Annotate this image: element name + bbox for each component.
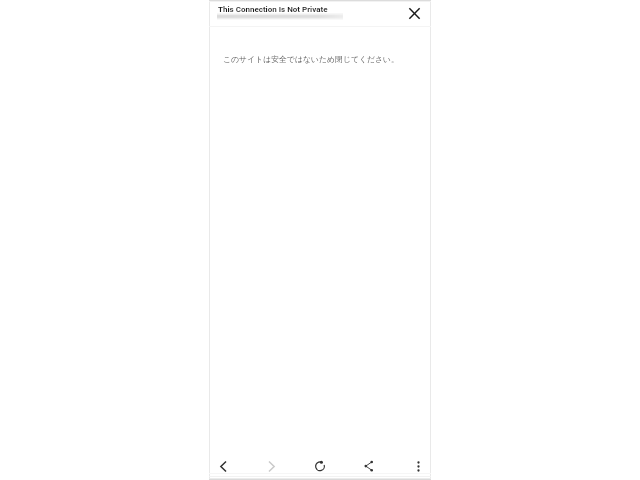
- button[interactable]: Share: [356, 453, 382, 479]
- staticText: This Connection Is Not Private: [218, 5, 328, 14]
- button[interactable]: Close: [404, 3, 424, 23]
- button[interactable]: Back: [210, 453, 236, 479]
- button[interactable]: More options: [405, 453, 431, 479]
- staticText: このサイトは安全ではないため閉じてください。: [223, 54, 399, 64]
- button[interactable]: Refresh: [307, 453, 333, 479]
- button[interactable]: Forward: [258, 453, 284, 479]
